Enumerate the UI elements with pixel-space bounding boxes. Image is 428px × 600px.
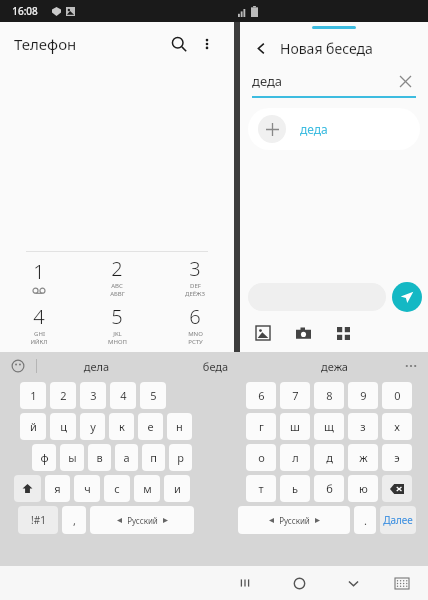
button[interactable]: Back bbox=[248, 35, 274, 61]
button[interactable]: е bbox=[138, 413, 163, 440]
button[interactable]: 4 bbox=[110, 382, 136, 409]
staticText: й bbox=[30, 419, 37, 434]
button[interactable]: 2 bbox=[50, 382, 76, 409]
button[interactable]: Gallery bbox=[250, 320, 276, 346]
staticText: в bbox=[96, 450, 103, 465]
button[interactable]: More suggestions bbox=[394, 352, 428, 380]
button[interactable]: Camera bbox=[290, 320, 316, 346]
button[interactable]: ч bbox=[74, 475, 100, 502]
staticText: э bbox=[394, 450, 400, 465]
button[interactable]: к bbox=[109, 413, 134, 440]
button[interactable]: ф bbox=[32, 444, 56, 471]
button[interactable]: 0 bbox=[382, 382, 412, 409]
staticText: GHI bbox=[34, 330, 45, 338]
staticText: 9 bbox=[360, 388, 367, 403]
button[interactable]: о bbox=[246, 444, 276, 471]
button[interactable]: , bbox=[62, 506, 86, 534]
button[interactable]: в bbox=[88, 444, 111, 471]
button[interactable]: п bbox=[142, 444, 165, 471]
button[interactable]: л bbox=[280, 444, 310, 471]
button[interactable]: ц bbox=[50, 413, 76, 440]
staticText: н bbox=[176, 419, 183, 434]
staticText: деда bbox=[252, 72, 394, 90]
button[interactable]: э bbox=[382, 444, 412, 471]
button[interactable]: Emoji bbox=[0, 352, 36, 380]
button[interactable]: б bbox=[314, 475, 344, 502]
button[interactable]: р bbox=[169, 444, 192, 471]
button[interactable]: а bbox=[115, 444, 138, 471]
button[interactable]: . bbox=[354, 506, 376, 534]
button[interactable]: 6 bbox=[156, 300, 234, 348]
button[interactable]: 4 bbox=[0, 300, 78, 348]
button[interactable]: !#1 bbox=[18, 506, 58, 534]
button[interactable]: Back bbox=[326, 566, 380, 600]
staticText: Далее bbox=[383, 513, 413, 527]
button[interactable]: ш bbox=[280, 413, 310, 440]
button[interactable]: беда bbox=[156, 359, 275, 374]
button[interactable]: х bbox=[382, 413, 412, 440]
button[interactable]: у bbox=[80, 413, 105, 440]
staticText: 3 bbox=[189, 255, 201, 282]
button[interactable]: More options bbox=[194, 31, 220, 57]
button[interactable]: ж bbox=[348, 444, 378, 471]
button[interactable]: 7 bbox=[280, 382, 310, 409]
button[interactable]: 6 bbox=[246, 382, 276, 409]
staticText: 1 bbox=[30, 388, 37, 403]
button[interactable]: 5 bbox=[78, 300, 156, 348]
button[interactable]: ь bbox=[280, 475, 310, 502]
staticText: . bbox=[364, 513, 367, 528]
staticText: 2 bbox=[60, 388, 67, 403]
button[interactable]: 2 bbox=[78, 252, 156, 300]
button[interactable]: щ bbox=[314, 413, 344, 440]
button[interactable]: с bbox=[104, 475, 130, 502]
button[interactable]: Recents bbox=[218, 566, 272, 600]
button[interactable]: дела bbox=[37, 359, 156, 374]
button[interactable]: Shift bbox=[14, 475, 41, 502]
button[interactable]: Search bbox=[164, 29, 194, 59]
staticText: ИЙКЛ bbox=[30, 338, 48, 346]
button[interactable]: Далее bbox=[380, 506, 416, 534]
button[interactable]: 8 bbox=[314, 382, 344, 409]
button[interactable]: я bbox=[45, 475, 70, 502]
staticText: а bbox=[123, 450, 130, 465]
staticText: 6 bbox=[258, 388, 265, 403]
button[interactable]: 3 bbox=[80, 382, 106, 409]
button[interactable]: Clear bbox=[394, 70, 416, 92]
button[interactable]: ю bbox=[348, 475, 378, 502]
button[interactable]: и bbox=[164, 475, 190, 502]
button[interactable]: дежа bbox=[275, 359, 394, 374]
staticText: 8 bbox=[326, 388, 333, 403]
button[interactable]: Send bbox=[392, 282, 422, 312]
button[interactable]: й bbox=[20, 413, 46, 440]
button[interactable]: т bbox=[246, 475, 276, 502]
button[interactable]: н bbox=[167, 413, 192, 440]
staticText: Русский bbox=[127, 515, 158, 526]
staticText: 1 bbox=[33, 258, 45, 285]
button[interactable]: ы bbox=[60, 444, 84, 471]
staticText: о bbox=[258, 450, 265, 465]
button[interactable]: Home bbox=[272, 566, 326, 600]
button[interactable]: деда bbox=[248, 108, 420, 150]
button[interactable]: Backspace bbox=[382, 475, 412, 502]
staticText: 5 bbox=[150, 388, 157, 403]
button[interactable]: 5 bbox=[140, 382, 166, 409]
button[interactable]: 9 bbox=[348, 382, 378, 409]
staticText: ь bbox=[292, 481, 298, 496]
button[interactable]: 1 bbox=[20, 382, 46, 409]
staticText: щ bbox=[324, 419, 334, 434]
button[interactable]: Hide keyboard bbox=[380, 566, 424, 600]
button[interactable]: Space, Русский bbox=[90, 506, 194, 534]
button[interactable]: деда bbox=[252, 66, 416, 96]
button[interactable]: г bbox=[246, 413, 276, 440]
button[interactable]: з bbox=[348, 413, 378, 440]
staticText: м bbox=[143, 481, 152, 496]
button[interactable]: 1 bbox=[0, 252, 78, 300]
staticText: б bbox=[326, 481, 333, 496]
button[interactable]: More attachments bbox=[330, 320, 356, 346]
button[interactable]: м bbox=[134, 475, 160, 502]
staticText: 0 bbox=[394, 388, 401, 403]
button[interactable]: д bbox=[314, 444, 344, 471]
button[interactable]: 3 bbox=[156, 252, 234, 300]
button[interactable]: Space, Русский bbox=[238, 506, 350, 534]
